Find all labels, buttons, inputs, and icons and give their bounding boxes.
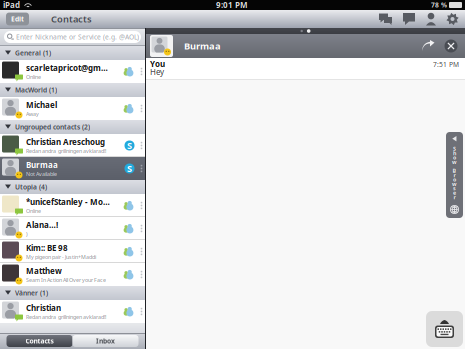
staticText: scarletapricot@gma… [26, 63, 110, 73]
staticText: Online [26, 73, 41, 80]
staticText: Kim:: BE 98 [26, 243, 68, 253]
button[interactable]: Settings [446, 12, 459, 25]
button[interactable]: Contacts [6, 335, 72, 347]
staticText: Contacts [51, 13, 92, 25]
button[interactable]: Inbox [72, 335, 138, 347]
staticText: Christian Areschoug [26, 137, 105, 147]
staticText: Alana…! [26, 220, 58, 230]
button[interactable]: Christian [0, 300, 145, 323]
button[interactable]: Kim:: BE 98 [0, 240, 145, 263]
staticText: r [453, 172, 455, 179]
staticText: iPad [3, 0, 20, 10]
staticText: Contacts [25, 337, 53, 345]
staticText: Enter Nickname or Service (e.g. @AOL) [16, 33, 139, 41]
button[interactable]: *unicefStanley - Mo… [0, 194, 145, 217]
staticText: You [150, 59, 165, 69]
staticText: r [453, 194, 455, 201]
button[interactable]: Hide Keyboard [426, 311, 463, 347]
staticText: h [453, 150, 456, 157]
staticText: o [453, 154, 456, 161]
button[interactable]: Chats [379, 12, 393, 25]
staticText: Burmaa [184, 40, 221, 52]
staticText: S [127, 162, 132, 175]
staticText: Inbox [96, 337, 115, 345]
staticText: Burmaa [26, 160, 58, 170]
staticText: 7:51 PM [433, 60, 459, 69]
staticText: MacWorld (1) [15, 86, 57, 94]
button[interactable]: Contacts [426, 12, 436, 25]
staticText [454, 163, 455, 170]
staticText: ) [26, 230, 28, 237]
staticText: o [453, 176, 456, 183]
button[interactable]: Michael [0, 97, 145, 120]
staticText: *unicefStanley - Mo… [26, 197, 110, 207]
staticText: Seam In Action All Over your Face [26, 276, 106, 283]
staticText: S [127, 139, 132, 152]
staticText: s [453, 185, 456, 192]
staticText: Vänner (1) [15, 289, 48, 297]
staticText: w [452, 180, 457, 187]
staticText: e [453, 189, 456, 196]
button[interactable]: Burmaa [0, 157, 145, 180]
staticText: 9:01 PM [216, 0, 248, 10]
staticText: Ungrouped contacts (2) [15, 123, 90, 131]
button[interactable]: Matthew [0, 263, 145, 286]
staticText: Not Available [26, 170, 57, 177]
button[interactable]: Edit [6, 13, 29, 25]
staticText: w [452, 158, 457, 165]
button[interactable]: Close [444, 39, 458, 53]
staticText: 78 % [431, 1, 447, 9]
staticText: Christian [26, 303, 61, 313]
staticText: Redan andra grillningen avklarad!! [26, 313, 106, 320]
staticText: Matthew [26, 266, 62, 276]
button[interactable]: scarletapricot@gma… [0, 60, 145, 83]
button[interactable]: Messages [403, 12, 416, 25]
staticText: Utopia (4) [15, 183, 47, 191]
staticText: Michael [26, 100, 57, 110]
staticText: My pigeon pair - Justin+Maddi [26, 253, 96, 260]
button[interactable]: Show Browser [446, 132, 463, 218]
staticText: B [452, 167, 456, 174]
staticText: Away [26, 110, 39, 117]
staticText: General (1) [15, 49, 51, 57]
button[interactable]: Christian Areschoug [0, 134, 145, 157]
button[interactable]: Enter Nickname or Service (e.g. @AOL) [4, 31, 141, 43]
button[interactable]: Alana…! [0, 217, 145, 240]
staticText: Hey [150, 67, 164, 77]
button[interactable]: Share [422, 40, 435, 52]
staticText: Redan andra grillningen avklarad!! [26, 147, 106, 154]
staticText: S [453, 145, 456, 152]
staticText: Edit [11, 15, 24, 23]
staticText: Online [26, 207, 41, 214]
